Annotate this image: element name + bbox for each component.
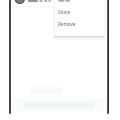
staticText: Share [58,9,71,15]
staticText: Remove [58,21,76,27]
button[interactable] [55,0,104,4]
button[interactable]: Share [55,4,104,17]
button[interactable] [12,0,54,6]
button[interactable]: Remove [55,17,104,30]
